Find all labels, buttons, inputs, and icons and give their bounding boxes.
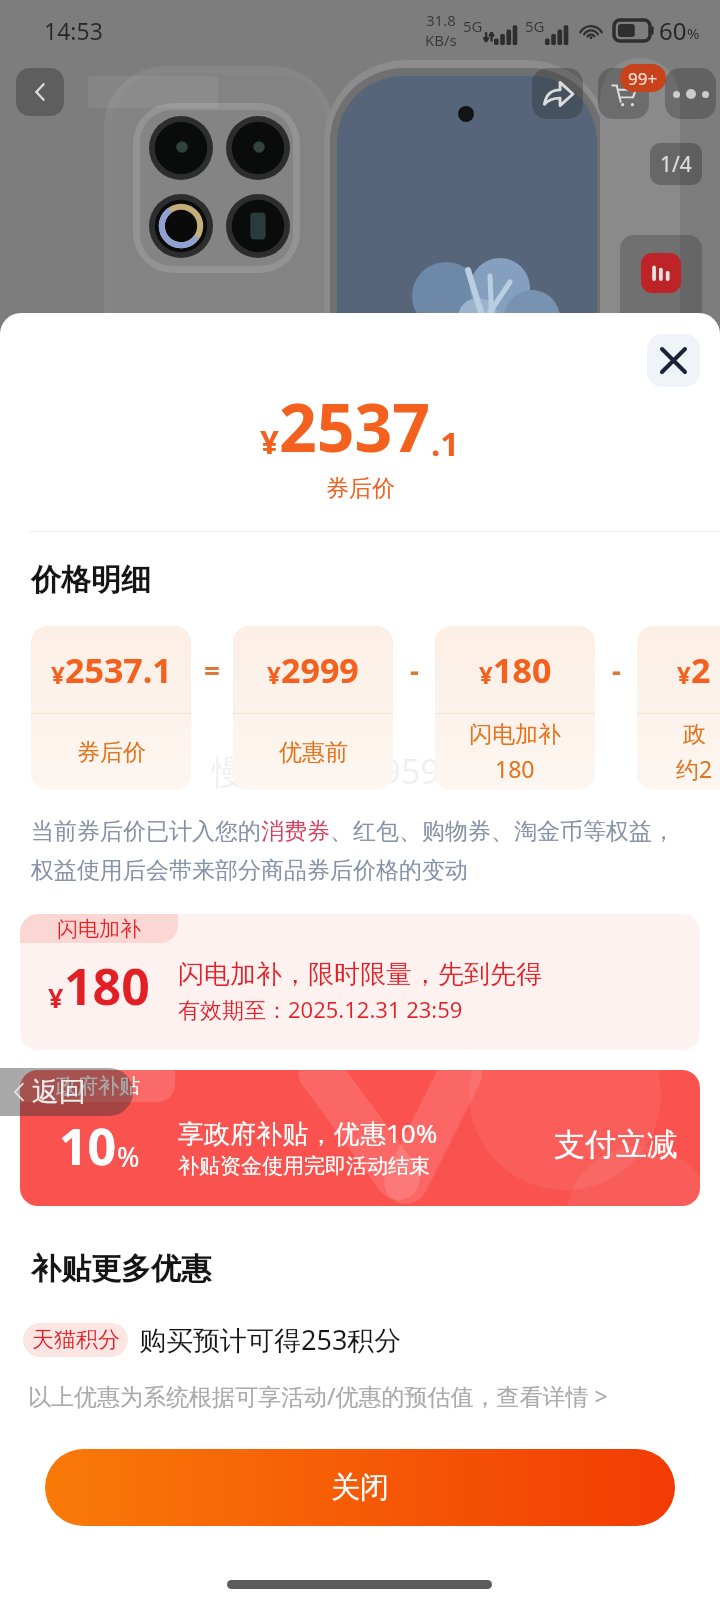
staticText: 权益使用后会带来部分商品券后价格的变动: [31, 856, 468, 885]
staticText: 2999: [281, 647, 359, 693]
button[interactable]: 政府补贴: [20, 1070, 700, 1206]
staticText: 99+: [628, 67, 658, 90]
button[interactable]: ¥: [233, 626, 393, 790]
staticText: 约2: [676, 753, 713, 784]
staticText: 2: [691, 647, 711, 693]
button[interactable]: ¥: [31, 626, 191, 790]
staticText: 政: [683, 720, 706, 749]
staticText: .1: [431, 421, 460, 466]
staticText: 券后价: [77, 738, 146, 767]
staticText: 180: [495, 753, 535, 784]
staticText: 2537.1: [65, 647, 172, 693]
staticText: 闪电加补，限时限量，先到先得: [178, 958, 542, 991]
staticText: 购买预计可得253积分: [139, 1321, 402, 1358]
staticText: 60: [659, 14, 687, 47]
staticText: 补贴资金使用完即活动结束: [178, 1153, 430, 1179]
button[interactable]: 关闭: [45, 1449, 675, 1526]
staticText: 享政府补贴，优惠10%: [178, 1115, 438, 1151]
staticText: ¥: [677, 658, 691, 691]
staticText: 补贴更多优惠: [31, 1250, 211, 1288]
button[interactable]: 以上优惠为系统根据可享活动/优惠的预估值，查看详情 >: [28, 1380, 608, 1411]
button[interactable]: 返回: [0, 1068, 133, 1116]
staticText: 10: [59, 1112, 117, 1180]
staticText: 价格明细: [31, 561, 151, 599]
staticText: 天猫积分: [32, 1326, 120, 1354]
staticText: 31.8: [426, 10, 456, 30]
staticText: 券后价: [326, 474, 395, 503]
button[interactable]: Back: [16, 68, 64, 116]
staticText: %: [687, 23, 700, 43]
staticText: 有效期至：2025.12.31 23:59: [178, 994, 463, 1024]
staticText: ¥: [51, 658, 65, 691]
staticText: 14:53: [44, 15, 103, 46]
staticText: 5G: [463, 16, 483, 36]
staticText: 优惠前: [279, 738, 348, 767]
staticText: KB/s: [425, 30, 457, 50]
staticText: -: [410, 651, 419, 689]
staticText: ¥: [479, 658, 493, 691]
button[interactable]: Cart: [598, 68, 649, 119]
button[interactable]: More: [665, 68, 716, 119]
button[interactable]: Price history: [620, 235, 702, 325]
button[interactable]: ¥: [435, 626, 595, 790]
staticText: 慢星人:65295968W: [212, 748, 511, 794]
staticText: 1/4: [660, 150, 692, 179]
staticText: 闪电加补: [469, 720, 561, 749]
staticText: 关闭: [331, 1469, 389, 1506]
button[interactable]: ¥: [637, 626, 720, 790]
staticText: 当前券后价已计入您的消费券、红包、购物券、淘金币等权益，: [31, 817, 675, 846]
staticText: 180: [64, 952, 150, 1020]
staticText: 2537: [279, 381, 431, 471]
staticText: %: [117, 1138, 140, 1175]
staticText: ¥: [48, 979, 64, 1016]
staticText: 支付立减: [554, 1125, 678, 1164]
button[interactable]: 闪电加补: [20, 914, 700, 1050]
button[interactable]: Share: [532, 68, 583, 119]
staticText: 5G: [525, 16, 545, 36]
staticText: 返回: [32, 1075, 86, 1109]
button[interactable]: Close: [647, 334, 700, 387]
staticText: =: [204, 651, 221, 689]
staticText: 闪电加补: [57, 916, 141, 942]
staticText: ¥: [267, 658, 281, 691]
staticText: -: [612, 651, 621, 689]
staticText: ¥: [260, 419, 279, 464]
staticText: 政府补贴: [56, 1073, 140, 1099]
staticText: 180: [493, 647, 552, 693]
